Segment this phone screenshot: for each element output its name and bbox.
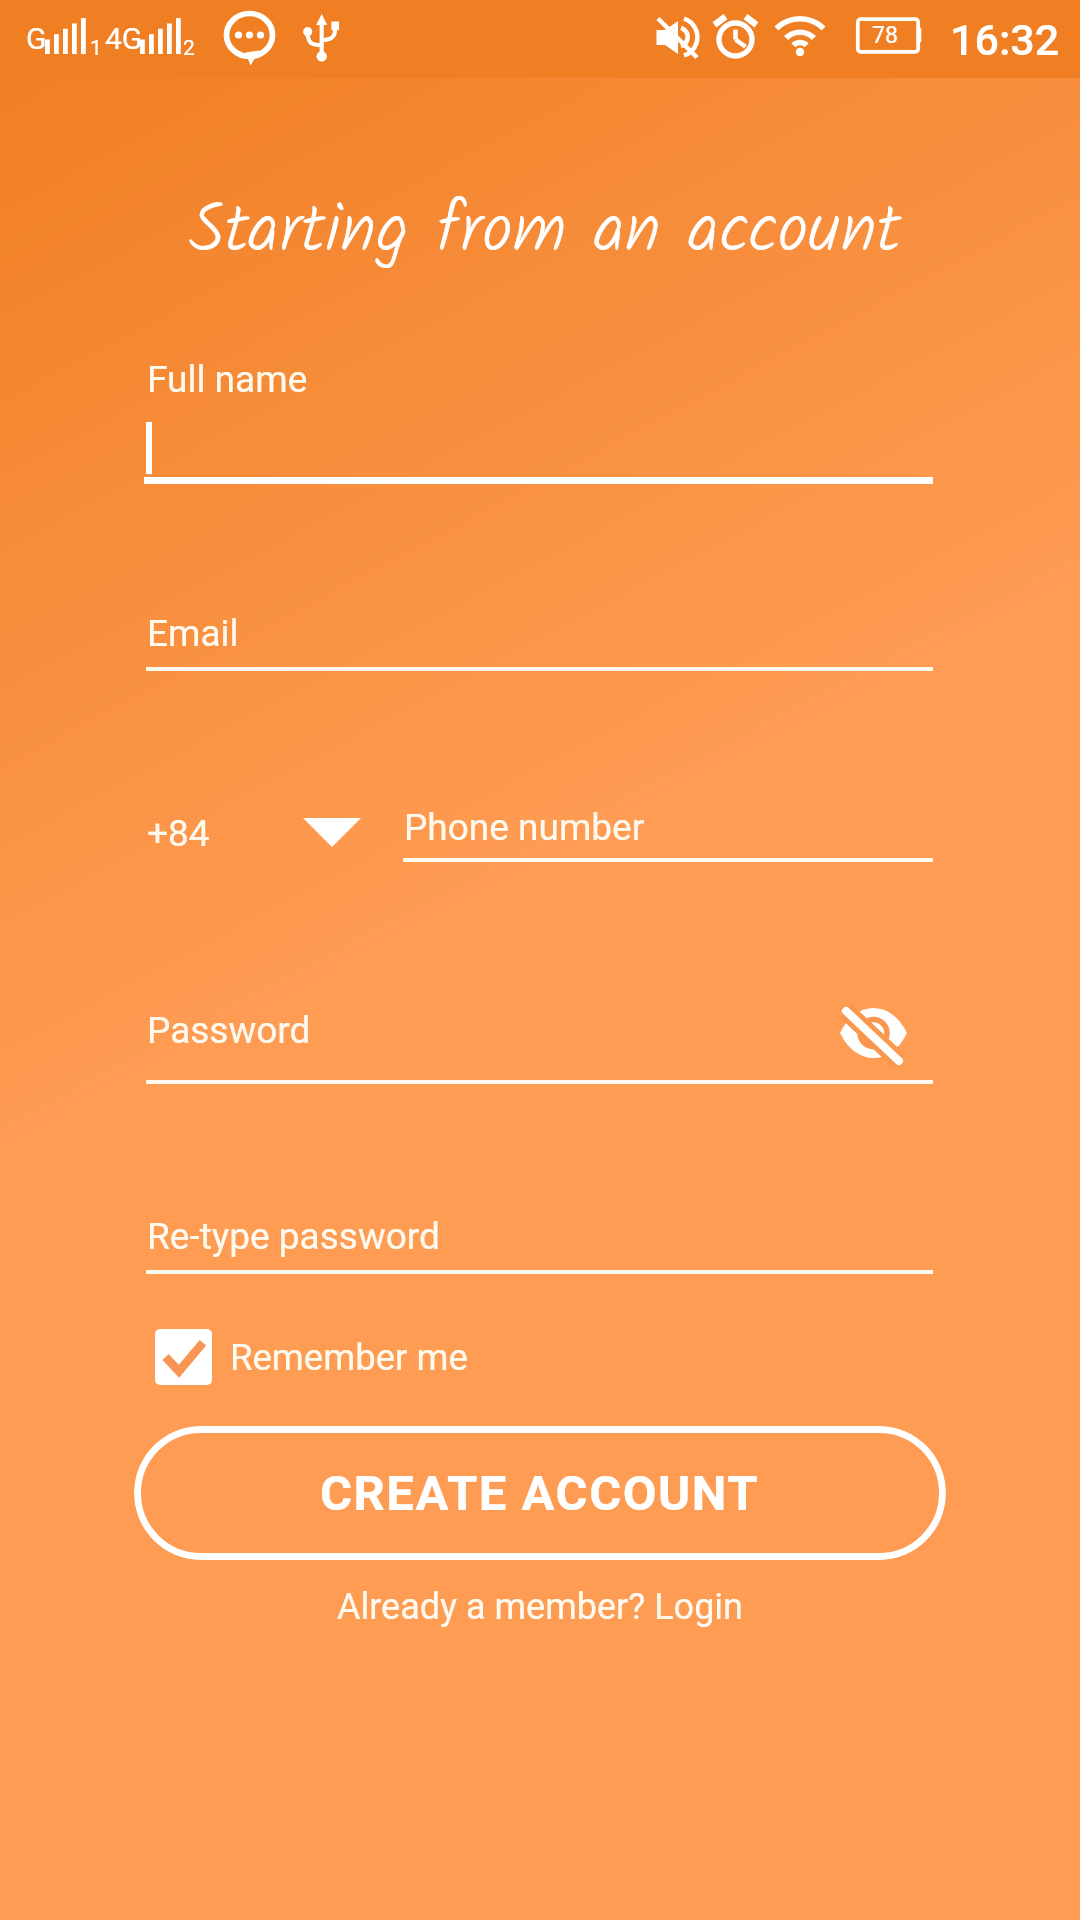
staticText: Password	[147, 1009, 311, 1052]
staticText: G	[26, 21, 47, 56]
button[interactable]: CREATE ACCOUNT	[134, 1426, 946, 1560]
staticText: +84	[147, 812, 210, 855]
staticText: CREATE ACCOUNT	[320, 1465, 760, 1522]
staticText: Full name	[147, 358, 308, 401]
button[interactable]: Full name	[0, 355, 1080, 495]
button[interactable]: Already a member? Login	[0, 1586, 1080, 1628]
staticText: Starting from an account	[5, 178, 1080, 287]
staticText: Phone number	[404, 806, 645, 849]
staticText: Re-type password	[147, 1215, 440, 1258]
button[interactable]: Show password	[824, 979, 924, 1041]
button[interactable]: Re-type password	[0, 1215, 1080, 1277]
staticText: Remember me	[230, 1336, 468, 1379]
button[interactable]: Remember me	[155, 1329, 468, 1385]
staticText: 1	[90, 36, 102, 61]
staticText: 78	[872, 22, 898, 49]
staticText: 4G	[105, 21, 143, 56]
staticText: 16:32	[950, 15, 1060, 65]
staticText: 2	[183, 36, 195, 61]
staticText: Email	[147, 612, 239, 655]
button[interactable]: Email	[0, 612, 1080, 674]
